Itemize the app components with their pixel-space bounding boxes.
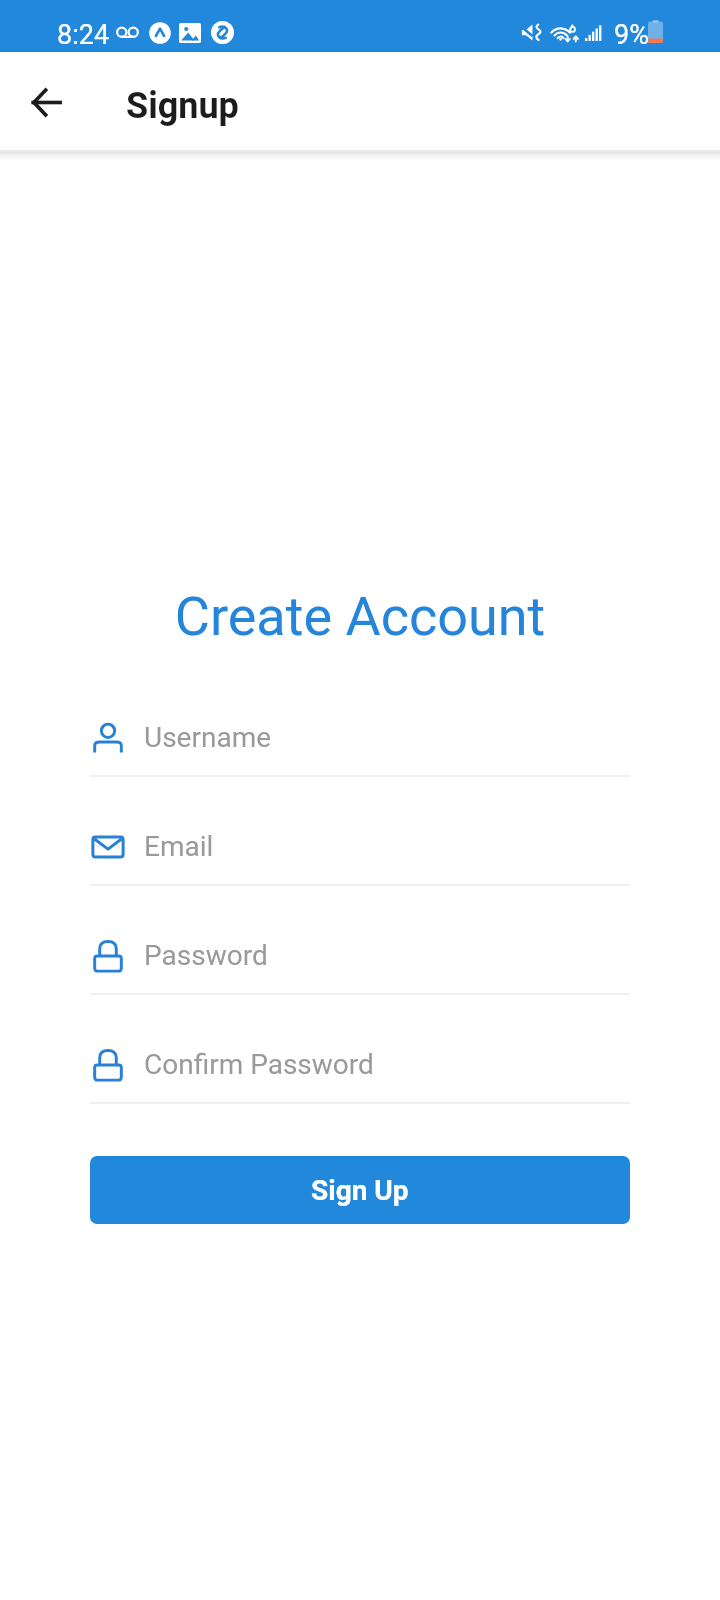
staticText: 8:24 <box>57 19 110 51</box>
button[interactable]: Back <box>16 72 76 132</box>
staticText: Email <box>144 830 214 863</box>
staticText: 9% <box>614 19 649 51</box>
staticText: Confirm Password <box>144 1048 374 1081</box>
staticText: Password <box>144 939 268 972</box>
button[interactable]: Email <box>90 777 630 886</box>
staticText: Create Account <box>0 585 720 648</box>
staticText: Signup <box>126 85 239 127</box>
button[interactable]: Sign Up <box>90 1156 630 1224</box>
staticText: Sign Up <box>311 1174 409 1207</box>
button[interactable]: Username <box>90 668 630 777</box>
staticText: Username <box>144 721 272 754</box>
button[interactable]: Password <box>90 886 630 995</box>
button[interactable]: Confirm Password <box>90 995 630 1104</box>
